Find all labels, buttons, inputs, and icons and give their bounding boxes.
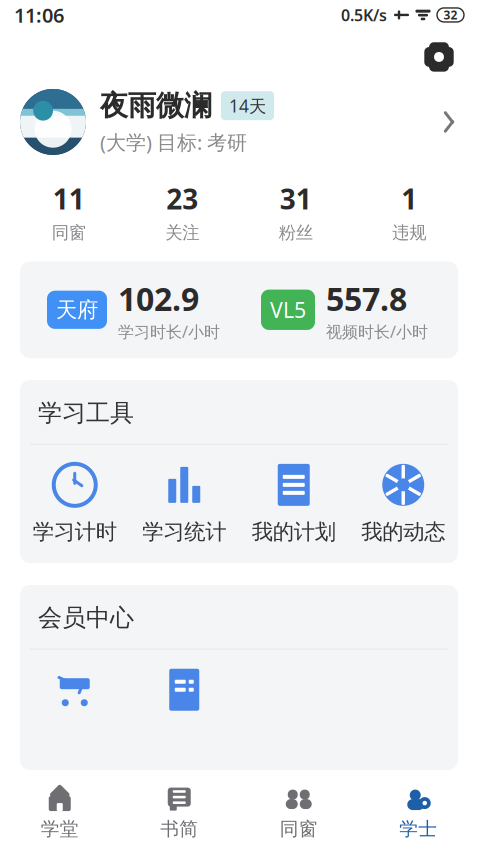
button[interactable]: [20, 650, 129, 770]
staticText: 我的计划: [252, 519, 336, 545]
staticText: 学习计时: [33, 519, 117, 545]
button[interactable]: 31: [239, 174, 352, 249]
button[interactable]: [129, 650, 239, 770]
button[interactable]: 23: [125, 174, 239, 249]
staticText: 14天: [229, 94, 266, 117]
staticText: 31: [280, 180, 312, 217]
staticText: 夜雨微澜: [100, 88, 212, 123]
button[interactable]: 我的动态: [348, 445, 458, 563]
staticText: 会员中心: [38, 603, 134, 632]
button[interactable]: 我的计划: [239, 445, 348, 563]
staticText: 我的动态: [361, 519, 445, 545]
staticText: VL5: [270, 296, 306, 324]
staticText: 11:06: [14, 2, 64, 28]
staticText: 粉丝: [279, 222, 313, 243]
staticText: 11: [53, 180, 85, 217]
staticText: 102.9: [118, 277, 199, 320]
staticText: 学习时长/小时: [118, 321, 220, 342]
staticText: (大学) 目标: 考研: [100, 129, 247, 155]
button[interactable]: VL5: [239, 277, 450, 342]
staticText: 1: [401, 180, 417, 217]
staticText: 书简: [160, 818, 198, 840]
staticText: 学堂: [41, 818, 79, 840]
staticText: 557.8: [326, 277, 407, 320]
staticText: 学习工具: [38, 398, 134, 428]
staticText: 23: [166, 180, 198, 217]
staticText: 32: [443, 7, 457, 23]
staticText: 0.5K/s: [341, 4, 387, 25]
button[interactable]: 1: [352, 174, 466, 249]
staticText: 学习统计: [142, 519, 226, 545]
button[interactable]: 11: [12, 174, 125, 249]
staticText: 同窗: [280, 818, 318, 840]
button[interactable]: 学士: [358, 778, 478, 850]
staticText: 关注: [165, 222, 199, 243]
button[interactable]: 书简: [119, 778, 239, 850]
staticText: 视频时长/小时: [326, 321, 428, 342]
button[interactable]: 设置: [412, 30, 466, 84]
button[interactable]: 学堂: [0, 778, 119, 850]
staticText: 同窗: [52, 222, 86, 243]
staticText: 学士: [399, 818, 437, 840]
button[interactable]: 天府: [28, 277, 239, 342]
staticText: 违规: [392, 222, 426, 243]
button[interactable]: 学习计时: [20, 445, 129, 563]
button[interactable]: 学习统计: [129, 445, 239, 563]
button[interactable]: 夜雨微澜: [0, 84, 478, 160]
button[interactable]: 同窗: [239, 778, 358, 850]
staticText: 天府: [56, 297, 98, 323]
